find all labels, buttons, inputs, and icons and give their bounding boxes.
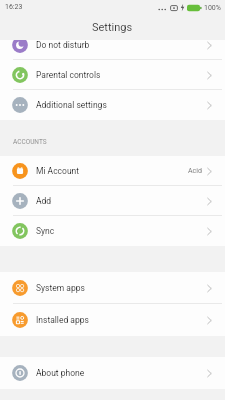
button[interactable]: Sync (0, 216, 225, 246)
staticText: About phone (36, 368, 85, 378)
staticText: Additional settings (36, 100, 107, 110)
button[interactable]: Add (0, 186, 225, 216)
button[interactable]: Installed apps (0, 304, 225, 336)
staticText: Mi Account (36, 166, 80, 176)
staticText: Do not disturb (36, 40, 90, 50)
button[interactable]: Mi Account (0, 156, 225, 186)
staticText: 16:23 (5, 3, 23, 11)
staticText: Installed apps (36, 315, 89, 325)
button[interactable]: Parental controls (0, 60, 225, 90)
button[interactable]: About phone (0, 357, 225, 389)
button[interactable]: Additional settings (0, 90, 225, 120)
staticText: 100% (204, 4, 221, 12)
button[interactable]: Do not disturb (0, 40, 225, 60)
staticText: Add (36, 196, 52, 206)
staticText: Parental controls (36, 70, 101, 80)
button[interactable]: System apps (0, 272, 225, 304)
staticText: Acid (188, 167, 202, 175)
staticText: Settings (92, 21, 133, 34)
staticText: ACCOUNTS (13, 138, 47, 146)
staticText: System apps (36, 283, 85, 293)
staticText: Sync (36, 226, 55, 236)
